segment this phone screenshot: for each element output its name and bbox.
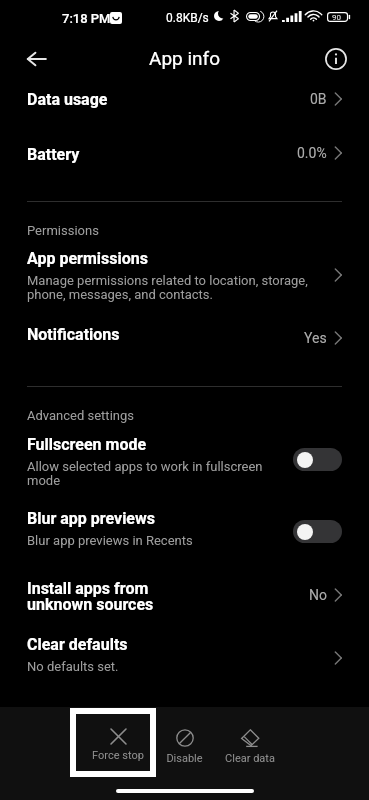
- staticText: 0.8KB/s: [166, 11, 209, 25]
- staticText: Fullscreen mode: [27, 435, 147, 454]
- button[interactable]: Back: [22, 44, 52, 74]
- staticText: 0.0%: [297, 145, 327, 161]
- button[interactable]: Fullscreen mode: [0, 426, 369, 490]
- staticText: Allow selected apps to work in fullscree…: [27, 459, 263, 488]
- staticText: App info: [149, 47, 220, 69]
- staticText: Blur app previews in Recents: [27, 533, 193, 548]
- staticText: Force stop: [92, 749, 144, 762]
- staticText: No: [309, 587, 327, 603]
- button[interactable]: Clear data: [217, 712, 283, 774]
- staticText: Clear defaults: [27, 635, 128, 654]
- button[interactable]: App permissions: [0, 240, 369, 306]
- button[interactable]: Notifications: [0, 314, 369, 360]
- staticText: 0B: [310, 91, 327, 107]
- staticText: Clear data: [225, 752, 275, 765]
- button[interactable]: Force stop: [85, 712, 151, 774]
- button[interactable]: Clear defaults: [0, 627, 369, 675]
- staticText: Yes: [304, 330, 327, 346]
- staticText: Blur app previews: [27, 509, 155, 528]
- button[interactable]: More info: [321, 44, 351, 74]
- staticText: No defaults set.: [27, 659, 119, 674]
- staticText: Manage permissions related to location, …: [27, 273, 308, 302]
- staticText: Notifications: [27, 325, 120, 344]
- button[interactable]: Force stop: [70, 708, 156, 777]
- button[interactable]: Toggle: [293, 448, 342, 471]
- button[interactable]: Data usage: [0, 80, 369, 126]
- staticText: 90: [332, 13, 341, 22]
- staticText: Advanced settings: [27, 408, 134, 423]
- button[interactable]: Blur app previews: [0, 501, 369, 549]
- staticText: Data usage: [27, 90, 108, 109]
- staticText: Permissions: [27, 223, 99, 238]
- staticText: 7:18 PM: [62, 11, 111, 26]
- button[interactable]: Toggle: [293, 520, 342, 543]
- staticText: Install apps from unknown sources: [27, 579, 154, 614]
- button[interactable]: Disable: [151, 712, 217, 774]
- staticText: Battery: [27, 145, 80, 164]
- button[interactable]: Battery: [0, 135, 369, 181]
- button[interactable]: Install apps from unknown sources: [0, 570, 369, 618]
- staticText: Disable: [166, 752, 203, 765]
- staticText: App permissions: [27, 249, 148, 268]
